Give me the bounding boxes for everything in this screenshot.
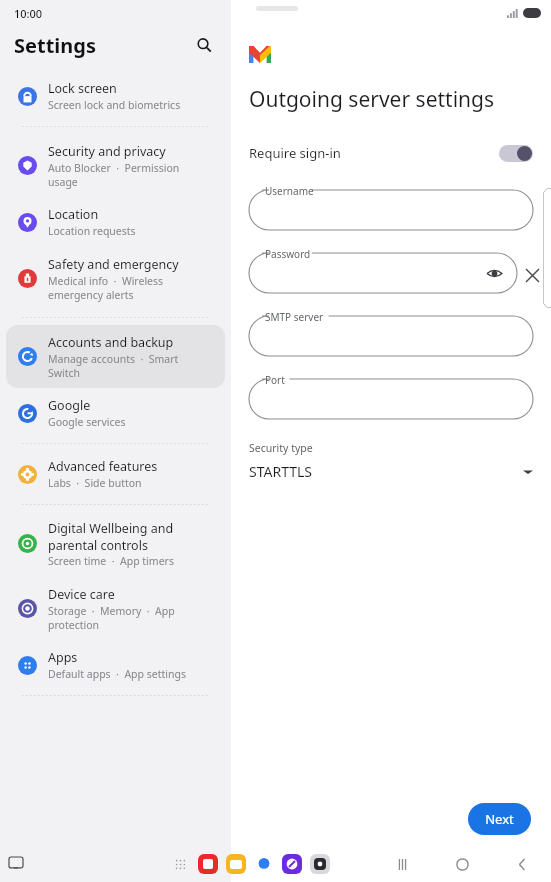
staticText: Security and privacy [48,143,166,160]
button[interactable]: Show password [483,262,505,284]
button[interactable]: Lock screen [6,73,225,119]
staticText: Safety and emergency [48,256,179,273]
staticText: Username [265,184,314,198]
button[interactable]: Password [249,247,517,293]
staticText: Digital Wellbeing and parental controls [48,520,174,553]
button[interactable]: Apps [6,642,225,688]
staticText: Screen lock and biometrics [48,98,181,112]
staticText: Google services [48,415,126,429]
staticText: Require sign-in [249,144,499,162]
button[interactable]: Location [6,199,225,245]
button[interactable]: Device care [6,577,225,640]
staticText: Location [48,206,99,223]
staticText: Manage accounts · Smart Switch [48,352,179,380]
button[interactable]: Samsung Notes [198,854,218,874]
button[interactable]: Search [191,32,217,58]
staticText: Default apps · App settings [48,667,186,681]
staticText: 10:00 [14,6,43,21]
button[interactable]: Accounts and backup [6,325,225,388]
staticText: Labs · Side button [48,476,142,490]
staticText: Screen time · App timers [48,554,174,568]
staticText: Lock screen [48,80,117,97]
staticText: Location requests [48,224,136,238]
staticText: Accounts and backup [48,334,174,351]
staticText: Password [265,247,311,261]
button[interactable]: Advanced features [6,451,225,497]
staticText: STARTTLS [249,462,523,481]
button[interactable]: Messages [254,854,274,874]
button[interactable] [499,145,533,162]
button[interactable]: Recents [391,853,413,875]
button[interactable]: Back [511,853,533,875]
staticText: Port [265,373,285,387]
button[interactable]: Security type [249,441,533,481]
staticText: Storage · Memory · App protection [48,604,175,632]
button[interactable]: Require sign-in [249,136,533,170]
staticText: Google [48,397,91,414]
button[interactable]: Camera [310,854,330,874]
button[interactable]: SMTP server [249,310,533,356]
staticText: Advanced features [48,458,158,475]
button[interactable]: Digital Wellbeing and parental controls [6,512,225,575]
staticText: Security type [249,441,313,455]
button[interactable]: Security and privacy [6,134,225,197]
staticText: Outgoing server settings [249,85,495,114]
button[interactable]: Safety and emergency [6,247,225,310]
button[interactable]: Username [249,184,533,230]
button[interactable]: My Files [226,854,246,874]
staticText: Device care [48,586,115,603]
button[interactable]: Google [6,390,225,436]
staticText: Next [485,810,514,828]
button[interactable]: All apps [170,854,190,874]
staticText: Auto Blocker · Permission usage [48,161,180,189]
button[interactable]: Multi window [5,853,27,875]
button[interactable]: Port [249,373,533,419]
staticText: SMTP server [265,310,324,324]
button[interactable]: Clear [517,260,547,290]
button[interactable]: Home [451,853,473,875]
button[interactable]: Internet [282,854,302,874]
staticText: Apps [48,649,78,666]
staticText: Settings [14,32,96,59]
button[interactable]: Next [468,803,531,835]
staticText: Medical info · Wireless emergency alerts [48,274,164,302]
